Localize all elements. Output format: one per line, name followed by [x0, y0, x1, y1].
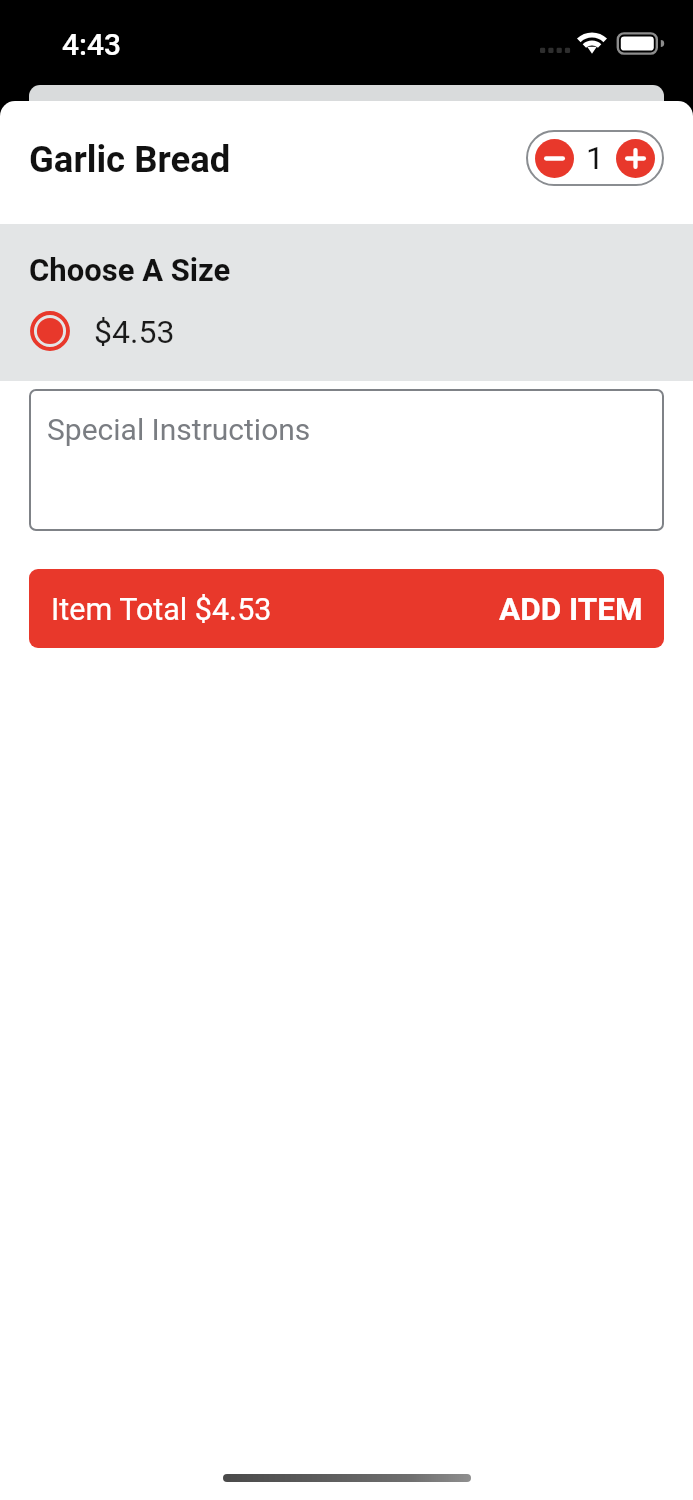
staticText: Choose A Size	[29, 252, 231, 288]
other: Battery full	[617, 32, 664, 54]
staticText: 4:43	[62, 27, 122, 62]
staticText: Special Instructions	[47, 412, 311, 447]
staticText: Item Total $4.53	[51, 592, 272, 628]
button[interactable]: Item Total $4.53	[29, 569, 664, 648]
button[interactable]: Increase quantity	[616, 139, 655, 178]
staticText: 1	[586, 139, 604, 177]
staticText: $4.53	[94, 313, 175, 351]
button[interactable]: Special Instructions	[29, 389, 664, 531]
staticText: ADD ITEM	[499, 591, 643, 628]
button[interactable]: $4.53	[0, 302, 693, 354]
button[interactable]: Decrease quantity	[535, 139, 574, 178]
other: Wi-Fi	[577, 32, 607, 54]
staticText: Garlic Bread	[29, 138, 231, 181]
other: Mobile signal	[540, 32, 569, 54]
